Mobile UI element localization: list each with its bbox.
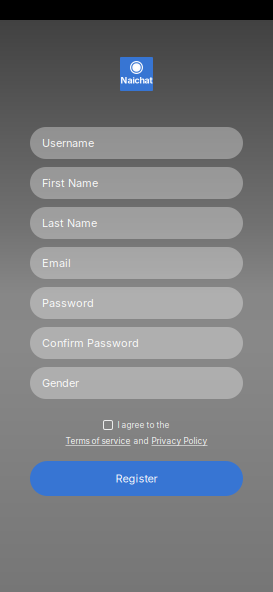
staticText: I agree to the bbox=[117, 420, 169, 430]
button[interactable]: First Name bbox=[30, 167, 243, 199]
button[interactable]: Username bbox=[30, 127, 243, 159]
button[interactable]: Gender bbox=[30, 367, 243, 399]
button[interactable]: I agree to the bbox=[103, 420, 169, 430]
button[interactable]: Confirm Password bbox=[30, 327, 243, 359]
button[interactable]: Last Name bbox=[30, 207, 243, 239]
staticText: Last Name bbox=[42, 216, 97, 230]
button[interactable]: Password bbox=[30, 287, 243, 319]
staticText: and bbox=[133, 436, 148, 446]
staticText: Register bbox=[115, 472, 157, 485]
staticText: Terms of service bbox=[65, 436, 130, 446]
button[interactable]: Email bbox=[30, 247, 243, 279]
button[interactable]: Register bbox=[30, 461, 243, 496]
staticText: Gender bbox=[42, 376, 79, 390]
button[interactable]: Privacy Policy bbox=[151, 436, 207, 446]
staticText: First Name bbox=[42, 176, 98, 190]
staticText: Naichat bbox=[120, 75, 152, 86]
button[interactable]: Terms of service bbox=[65, 436, 130, 446]
staticText: Password bbox=[42, 296, 94, 310]
staticText: Username bbox=[42, 136, 94, 150]
staticText: Confirm Password bbox=[42, 336, 139, 350]
staticText: Privacy Policy bbox=[151, 436, 207, 446]
staticText: Email bbox=[42, 256, 71, 270]
